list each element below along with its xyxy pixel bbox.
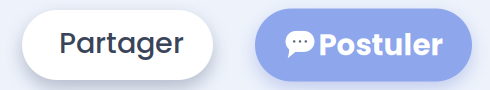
staticText: Partager	[59, 23, 184, 63]
button[interactable]: Postuler	[255, 8, 472, 81]
button[interactable]: Partager	[22, 10, 213, 80]
staticText: Postuler	[318, 24, 443, 66]
